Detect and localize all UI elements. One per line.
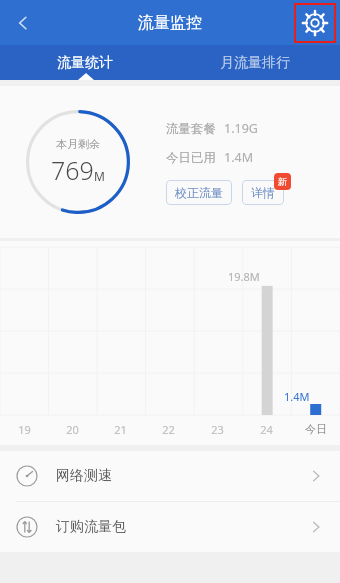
- button[interactable]: 网络测速: [0, 451, 340, 501]
- staticText: 23: [211, 422, 224, 437]
- staticText: 19.8M: [228, 269, 260, 284]
- staticText: 流量监控: [138, 13, 202, 33]
- button[interactable]: 订购流量包: [0, 502, 340, 552]
- staticText: 流量套餐: [166, 121, 216, 137]
- staticText: 详情: [251, 185, 275, 200]
- staticText: 网络测速: [56, 467, 112, 485]
- staticText: 1.4M: [284, 389, 310, 404]
- staticText: 校正流量: [175, 185, 223, 200]
- button[interactable]: 详情: [242, 180, 284, 205]
- staticText: 订购流量包: [56, 518, 126, 536]
- staticText: 月流量排行: [220, 54, 290, 72]
- staticText: 新: [278, 176, 287, 187]
- button[interactable]: Back: [0, 0, 45, 45]
- staticText: 本月剩余: [56, 137, 100, 151]
- staticText: 流量统计: [57, 54, 113, 72]
- staticText: 1.4M: [224, 149, 253, 166]
- staticText: 769: [51, 153, 94, 187]
- button[interactable]: 流量统计: [0, 45, 170, 80]
- staticText: 今日已用: [166, 150, 216, 166]
- staticText: 21: [114, 422, 127, 437]
- staticText: 20: [66, 422, 79, 437]
- staticText: 今日: [305, 422, 327, 436]
- staticText: 22: [162, 422, 175, 437]
- staticText: 24: [260, 422, 273, 437]
- button[interactable]: Settings: [294, 3, 336, 43]
- staticText: 19: [18, 422, 31, 437]
- button[interactable]: 月流量排行: [170, 45, 340, 80]
- staticText: 1.19G: [224, 120, 258, 137]
- button[interactable]: 校正流量: [166, 180, 232, 205]
- staticText: M: [94, 168, 105, 184]
